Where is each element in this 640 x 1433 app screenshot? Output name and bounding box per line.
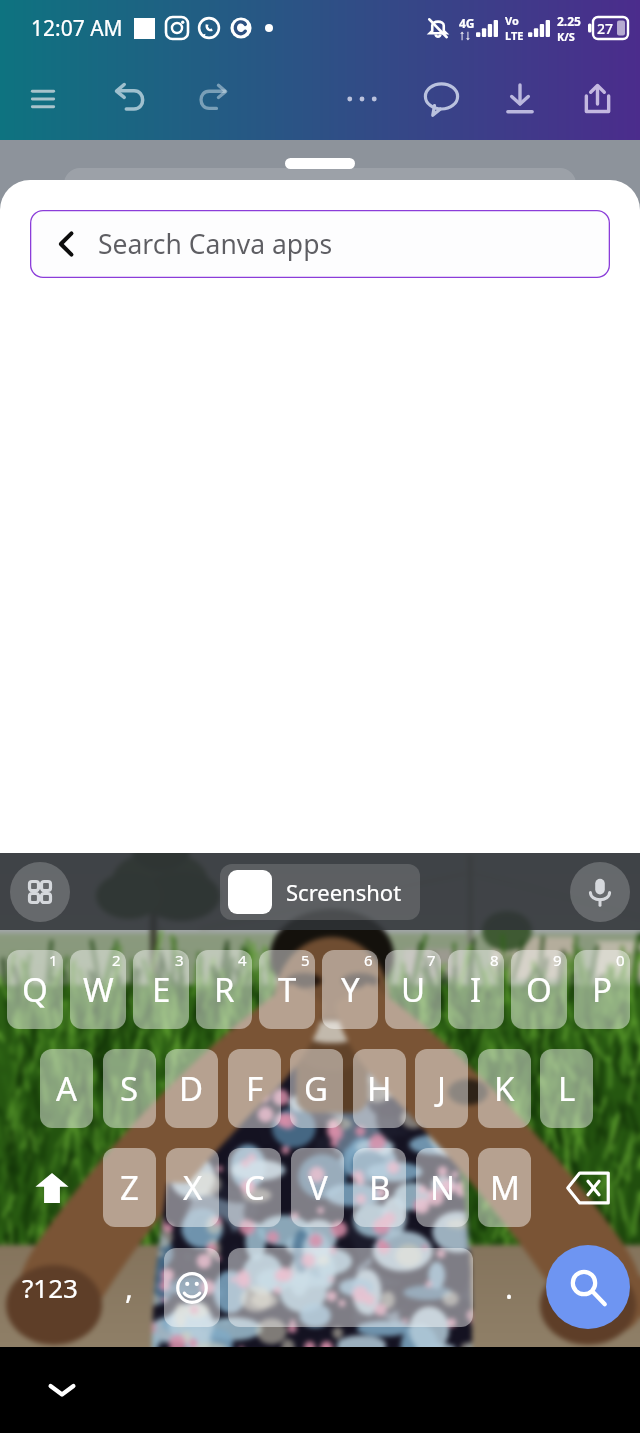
button[interactable]: K	[478, 1049, 531, 1128]
staticText: 7	[427, 950, 436, 970]
staticText: 5	[301, 950, 310, 970]
button[interactable]: Back	[44, 221, 90, 267]
staticText: G	[304, 1066, 329, 1111]
staticText: Y	[341, 967, 360, 1012]
staticText: U	[401, 967, 426, 1012]
staticText: L	[558, 1066, 576, 1111]
staticText: 2	[112, 950, 121, 970]
button[interactable]: C	[228, 1148, 281, 1227]
staticText: X	[183, 1165, 203, 1210]
button[interactable]: N	[416, 1148, 469, 1227]
staticText: H	[367, 1066, 392, 1111]
button[interactable]: U	[385, 950, 441, 1029]
staticText: W	[83, 967, 114, 1012]
staticText: F	[246, 1066, 264, 1111]
button[interactable]: X	[166, 1148, 219, 1227]
button[interactable]: Back	[30, 210, 610, 278]
staticText: P	[592, 967, 612, 1012]
staticText: E	[152, 967, 171, 1012]
button[interactable]: Emoji	[164, 1248, 220, 1327]
button[interactable]: B	[353, 1148, 406, 1227]
button[interactable]: Screenshot	[220, 864, 420, 920]
staticText: K/S	[557, 29, 575, 44]
button[interactable]: Space	[228, 1248, 473, 1327]
staticText: 0	[616, 950, 625, 970]
button[interactable]: Period	[478, 1248, 540, 1327]
button[interactable]: Share	[574, 75, 621, 122]
button[interactable]: Menu	[21, 77, 65, 121]
button[interactable]: T	[259, 950, 315, 1029]
button[interactable]: D	[165, 1049, 218, 1128]
button[interactable]: Comments	[416, 73, 467, 124]
button[interactable]: Comma	[100, 1248, 158, 1327]
button[interactable]: M	[478, 1148, 531, 1227]
staticText: I	[470, 967, 482, 1012]
staticText: R	[214, 967, 235, 1012]
button[interactable]: Shift	[12, 1148, 92, 1227]
button[interactable]: Y	[322, 950, 378, 1029]
button[interactable]: O	[511, 950, 567, 1029]
staticText: ,	[125, 1267, 134, 1308]
staticText: C	[244, 1165, 265, 1210]
staticText: D	[179, 1066, 204, 1111]
staticText: 12:07 AM	[31, 14, 123, 43]
staticText: O	[526, 967, 552, 1012]
staticText: B	[369, 1165, 391, 1210]
button[interactable]: E	[133, 950, 189, 1029]
button[interactable]: Search	[546, 1245, 630, 1329]
staticText: A	[56, 1066, 78, 1111]
staticText: S	[120, 1066, 139, 1111]
staticText: 1	[49, 950, 58, 970]
button[interactable]: Keyboard menu	[10, 862, 70, 922]
button[interactable]: P	[574, 950, 630, 1029]
staticText: M	[490, 1165, 520, 1210]
staticText: ?123	[22, 1270, 78, 1305]
staticText: T	[278, 967, 297, 1012]
staticText: 27	[597, 19, 614, 38]
button[interactable]: More options	[337, 74, 387, 124]
staticText: Q	[22, 967, 48, 1012]
button[interactable]: V	[291, 1148, 344, 1227]
button[interactable]: Q	[7, 950, 63, 1029]
staticText: N	[430, 1165, 456, 1210]
button[interactable]: I	[448, 950, 504, 1029]
button[interactable]: Download	[496, 75, 544, 123]
button[interactable]: J	[415, 1049, 468, 1128]
button[interactable]: H	[353, 1049, 406, 1128]
staticText: 8	[490, 950, 499, 970]
button[interactable]: F	[228, 1049, 281, 1128]
button[interactable]: W	[70, 950, 126, 1029]
staticText: .	[505, 1267, 514, 1308]
staticText: 6	[364, 950, 373, 970]
staticText: 4	[238, 950, 247, 970]
button[interactable]: Hide keyboard	[38, 1366, 86, 1414]
staticText: J	[437, 1066, 447, 1111]
staticText: Vo	[505, 13, 519, 28]
button[interactable]: Symbols	[4, 1248, 96, 1327]
staticText: 3	[175, 950, 184, 970]
staticText: Search Canva apps	[98, 226, 333, 262]
button[interactable]: Voice input	[570, 862, 630, 922]
staticText: 9	[553, 950, 562, 970]
button[interactable]: Z	[103, 1148, 156, 1227]
button[interactable]: L	[540, 1049, 593, 1128]
button[interactable]: A	[40, 1049, 93, 1128]
staticText: K	[494, 1066, 515, 1111]
staticText: Screenshot	[286, 877, 402, 907]
button[interactable]: Undo	[105, 73, 156, 124]
staticText: V	[308, 1165, 328, 1210]
button[interactable]: S	[103, 1049, 156, 1128]
staticText: 4G	[459, 15, 475, 31]
button[interactable]: R	[196, 950, 252, 1029]
staticText: Z	[120, 1165, 139, 1210]
button[interactable]: Redo	[188, 74, 237, 123]
staticText: 2.25	[557, 13, 581, 29]
button[interactable]: Backspace	[548, 1148, 628, 1227]
button[interactable]: G	[290, 1049, 343, 1128]
staticText: LTE	[505, 28, 524, 43]
